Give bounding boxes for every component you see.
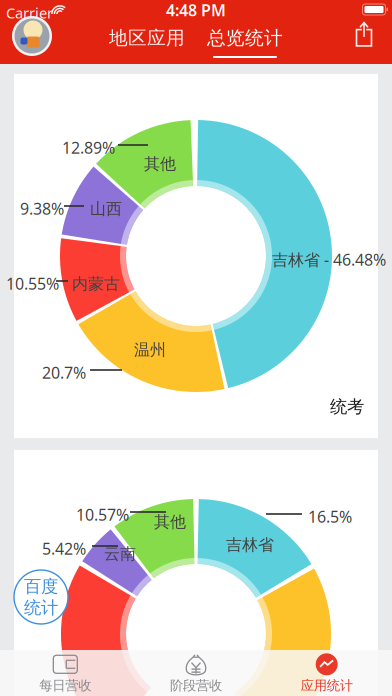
button[interactable]: 总览统计 (205, 20, 285, 56)
staticText: 20.7% (42, 362, 86, 383)
staticText: 统考 (330, 396, 364, 417)
button[interactable]: 阶段营收 (131, 650, 261, 696)
staticText: 其他 (144, 154, 176, 174)
staticText: 5.42% (42, 538, 86, 559)
staticText: 吉林省 - 46.48% (272, 249, 386, 270)
button[interactable]: Share (344, 14, 384, 54)
button[interactable]: 地区应用 (107, 20, 187, 56)
button[interactable]: Profile (12, 16, 52, 56)
staticText: Carrier (6, 3, 53, 22)
staticText: 9.38% (20, 198, 64, 219)
staticText: 百度 (24, 576, 58, 597)
staticText: 10.55% (6, 273, 59, 294)
staticText: 吉林省 (226, 535, 274, 555)
button[interactable]: 每日营收 (0, 650, 131, 696)
staticText: 地区应用 (109, 26, 185, 49)
staticText: 山西 (90, 199, 122, 219)
staticText: 其他 (154, 512, 186, 532)
staticText: 12.89% (62, 137, 115, 158)
staticText: 4:48 PM (166, 0, 226, 21)
staticText: 内蒙古 (72, 274, 120, 294)
staticText: 温州 (134, 340, 166, 360)
staticText: 总览统计 (207, 26, 283, 49)
button[interactable]: 应用统计 (261, 650, 392, 696)
staticText: 每日营收 (39, 677, 91, 694)
staticText: 10.57% (76, 504, 129, 525)
staticText: 云南 (104, 544, 136, 564)
staticText: 统计 (24, 597, 58, 618)
staticText: 应用统计 (301, 677, 353, 694)
staticText: 阶段营收 (170, 677, 222, 694)
staticText: 16.5% (308, 506, 352, 527)
